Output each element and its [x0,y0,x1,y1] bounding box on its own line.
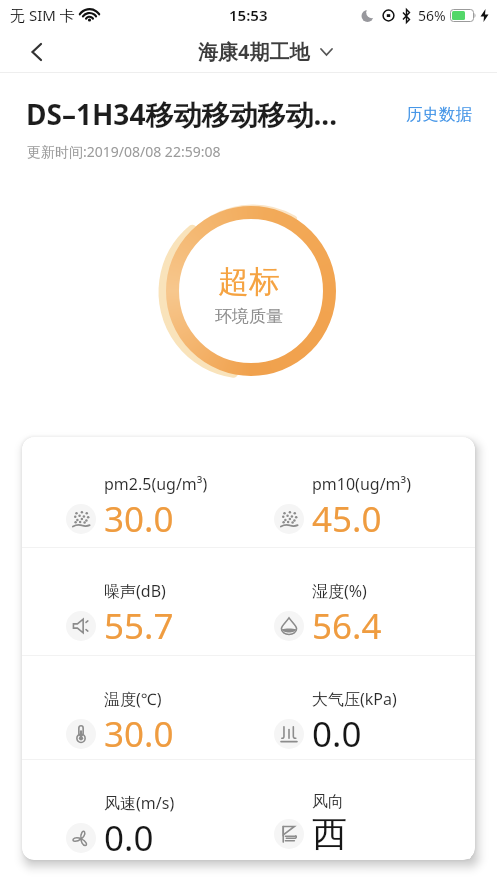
button[interactable]: 海康4期工地 [198,38,333,65]
button[interactable] [22,38,50,66]
button[interactable]: DS–1H34移动移动移动... [26,95,337,133]
staticText: 30.0 [104,710,174,758]
staticText: 湿度(%) [312,580,367,602]
button[interactable]: 大气压(kPa) [274,688,397,758]
staticText: 56% [418,6,446,25]
staticText: 45.0 [312,495,382,543]
staticText: 55.7 [104,602,174,650]
staticText: 0.0 [104,814,154,860]
button[interactable]: pm2.5(ug/m³) [66,473,208,543]
staticText: DS–1H34移动移动移动... [26,95,337,133]
staticText: pm2.5(ug/m³) [104,473,208,495]
button[interactable]: 湿度(%) [274,580,382,650]
staticText: 温度(℃) [104,688,162,710]
button[interactable]: 历史数据 [406,104,472,125]
staticText: 历史数据 [406,104,472,125]
button[interactable]: pm10(ug/m³) [274,473,411,543]
button[interactable]: 温度(℃) [66,688,174,758]
staticText: 环境质量 [215,306,283,327]
staticText: pm10(ug/m³) [312,473,411,495]
staticText: 噪声(dB) [104,580,166,602]
staticText: 0.0 [312,710,362,758]
staticText: 海康4期工地 [198,38,310,65]
button[interactable]: 噪声(dB) [66,580,174,650]
staticText: 56.4 [312,602,382,650]
button[interactable]: 风速(m/s) [66,792,175,860]
staticText: 15:53 [229,5,268,25]
staticText: 西 [312,812,347,856]
staticText: 风速(m/s) [104,792,175,814]
staticText: 大气压(kPa) [312,688,397,710]
staticText: 超标 [218,262,280,301]
staticText: 无 SIM 卡 [10,5,75,25]
button[interactable]: 风向 [274,792,347,856]
staticText: 30.0 [104,495,174,543]
staticText: 风向 [312,792,344,812]
staticText: 更新时间:2019/08/08 22:59:08 [27,142,221,161]
